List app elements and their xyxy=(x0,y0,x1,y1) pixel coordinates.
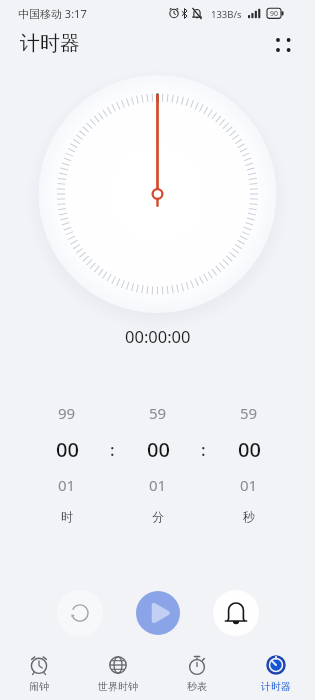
staticText: 计时器 xyxy=(261,680,291,693)
button[interactable]: 01 xyxy=(37,470,97,500)
button[interactable]: 01 xyxy=(128,470,188,500)
button[interactable]: 00 xyxy=(37,431,97,467)
staticText: 133B/s xyxy=(211,8,242,21)
button[interactable]: 99 xyxy=(37,398,97,428)
staticText: 01 xyxy=(149,475,167,495)
staticText: 分 xyxy=(152,509,164,524)
staticText: 01 xyxy=(240,475,258,495)
staticText: : xyxy=(110,438,115,461)
button[interactable]: 01 xyxy=(219,470,279,500)
button[interactable]: 分 xyxy=(128,503,188,529)
staticText: 01 xyxy=(58,475,76,495)
staticText: 闹钟 xyxy=(29,680,49,693)
button[interactable]: 59 xyxy=(128,398,188,428)
staticText: : xyxy=(201,438,206,461)
staticText: 时 xyxy=(61,509,73,524)
staticText: 00 xyxy=(56,436,79,463)
button[interactable] xyxy=(272,34,296,58)
staticText: 秒 xyxy=(243,509,255,524)
button[interactable]: 秒 xyxy=(219,503,279,529)
button[interactable] xyxy=(213,590,259,636)
button[interactable] xyxy=(136,591,180,635)
button[interactable]: 闹钟 xyxy=(0,646,78,700)
staticText: 计时器 xyxy=(20,31,80,56)
staticText: 99 xyxy=(58,403,76,423)
staticText: 00:00:00 xyxy=(125,325,191,347)
button[interactable]: 时 xyxy=(37,503,97,529)
button[interactable]: 计时器 xyxy=(236,646,315,700)
button[interactable]: 00 xyxy=(219,431,279,467)
staticText: 59 xyxy=(149,403,167,423)
staticText: 秒表 xyxy=(187,680,207,693)
staticText: 00 xyxy=(238,436,261,463)
staticText: 90 xyxy=(270,9,279,19)
staticText: 59 xyxy=(240,403,258,423)
button[interactable]: 00 xyxy=(128,431,188,467)
button[interactable]: 世界时钟 xyxy=(78,646,157,700)
staticText: 00 xyxy=(147,436,170,463)
button[interactable] xyxy=(57,590,103,636)
button[interactable]: 秒表 xyxy=(157,646,236,700)
staticText: 中国移动 3:17 xyxy=(18,6,87,21)
button[interactable]: 59 xyxy=(219,398,279,428)
staticText: 世界时钟 xyxy=(98,680,138,693)
